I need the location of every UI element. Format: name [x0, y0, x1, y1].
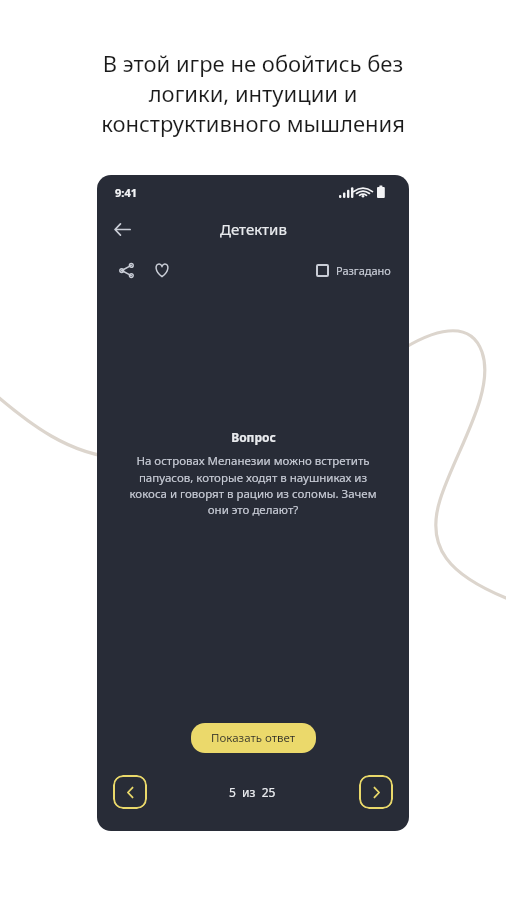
button[interactable]: Разгадано [312, 259, 395, 282]
staticText: Детектив [220, 219, 287, 239]
staticText: 9:41 [115, 185, 137, 200]
button[interactable]: Показать ответ [191, 723, 316, 753]
button[interactable]: Favorite [147, 255, 177, 285]
staticText: В этой игре не обойтись без логики, инту… [101, 48, 405, 138]
staticText: На островах Меланезии можно встретить па… [119, 453, 387, 517]
button[interactable]: Previous [113, 775, 147, 809]
staticText: Разгадано [336, 263, 391, 278]
button[interactable]: Back [105, 212, 139, 246]
button[interactable]: Share [111, 255, 141, 285]
staticText: Вопрос [231, 429, 276, 445]
button[interactable]: Next [359, 775, 393, 809]
staticText: 5 из 25 [229, 784, 276, 800]
staticText: Показать ответ [211, 730, 296, 746]
